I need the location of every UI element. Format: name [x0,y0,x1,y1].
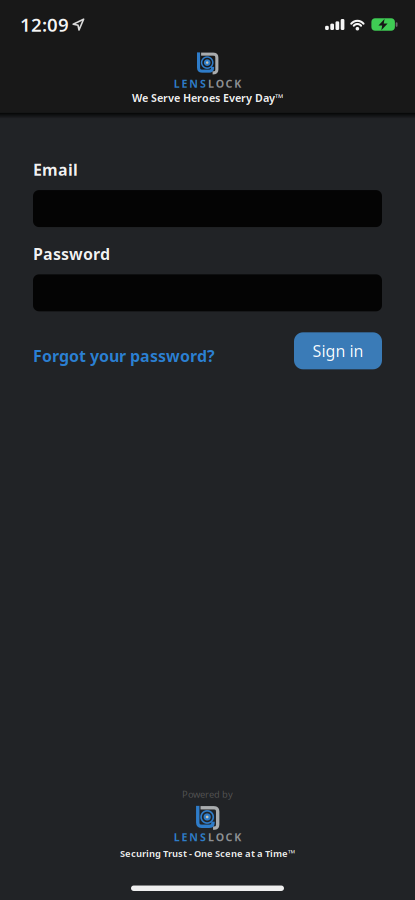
button[interactable]: Sign in [294,332,382,369]
staticText: K [234,830,241,844]
staticText: Powered by [182,788,233,800]
staticText: N [189,830,198,844]
staticText: Forgot your password? [33,345,215,366]
staticText: S [200,830,206,844]
staticText: C [225,830,232,844]
staticText: O [216,76,224,91]
staticText: O [216,830,224,844]
staticText: L [174,76,180,91]
staticText: L [208,830,214,844]
staticText: K [234,76,241,91]
staticText: Password [33,243,110,264]
staticText: C [225,76,232,91]
staticText: L [208,76,214,91]
staticText: N [189,76,198,91]
staticText: Securing Trust - One Scene at a Time™ [120,847,295,859]
staticText: S [200,76,206,91]
staticText: Email [33,159,78,180]
staticText: E [181,76,187,91]
button[interactable]: Forgot your password? [33,335,215,366]
staticText: Sign in [312,340,363,361]
staticText: 12:09 [20,12,69,37]
staticText: L [174,830,180,844]
staticText: E [181,830,187,844]
staticText: We Serve Heroes Every Day™ [132,91,283,105]
